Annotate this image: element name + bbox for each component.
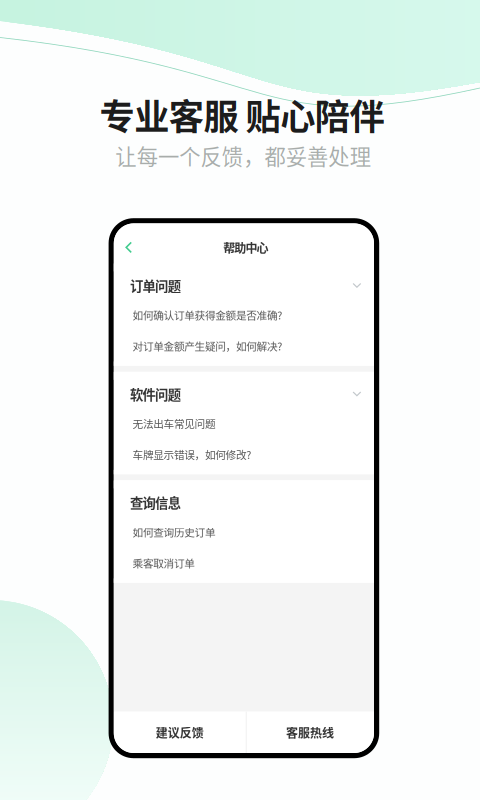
staticText: 让每一个反馈，都妥善处理 (115, 140, 371, 171)
button[interactable]: 无法出车常见问题 (114, 408, 374, 439)
button[interactable]: 乘客取消订单 (114, 547, 374, 578)
staticText: 订单问题 (130, 276, 181, 295)
staticText: 客服热线 (286, 724, 334, 741)
staticText: 软件问题 (130, 384, 181, 403)
staticText: 车牌显示错误，如何修改? (133, 447, 251, 462)
staticText: 专业客服 贴心陪伴 (100, 89, 384, 140)
button[interactable]: 对订单金额产生疑问，如何解决? (114, 330, 374, 361)
staticText: 如何确认订单获得金额是否准确? (133, 307, 282, 323)
staticText: 对订单金额产生疑问，如何解决? (133, 338, 282, 354)
staticText: 如何查询历史订单 (133, 524, 216, 540)
button[interactable]: 车牌显示错误，如何修改? (114, 439, 374, 470)
staticText: 无法出车常见问题 (133, 416, 216, 431)
staticText: 帮助中心 (223, 239, 269, 256)
staticText: 查询信息 (130, 493, 181, 512)
button[interactable]: 客服热线 (246, 712, 374, 753)
button[interactable]: 建议反馈 (114, 712, 246, 753)
staticText: 乘客取消订单 (133, 555, 195, 571)
staticText: 建议反馈 (156, 724, 204, 741)
button[interactable]: Back (114, 227, 144, 267)
button[interactable]: 如何查询历史订单 (114, 516, 374, 547)
button[interactable]: 如何确认订单获得金额是否准确? (114, 299, 374, 330)
